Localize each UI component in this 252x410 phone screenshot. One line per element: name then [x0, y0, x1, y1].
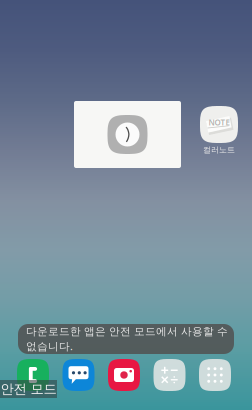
staticText: NOTE [208, 117, 229, 128]
button[interactable]: Calculator [153, 359, 185, 391]
staticText: 안전 모드 [0, 381, 56, 397]
staticText: 컬러노트 [203, 145, 235, 155]
button[interactable]: Phone [17, 359, 49, 391]
button[interactable]: 컬러노트 [200, 106, 238, 155]
button[interactable]: Apps [199, 359, 231, 391]
staticText: 없습니다. [26, 339, 73, 353]
button[interactable]: Camera [108, 359, 140, 391]
staticText: 다운로드한 앱은 안전 모드에서 사용할 수 [26, 325, 228, 338]
button[interactable]: Messages [62, 359, 94, 391]
